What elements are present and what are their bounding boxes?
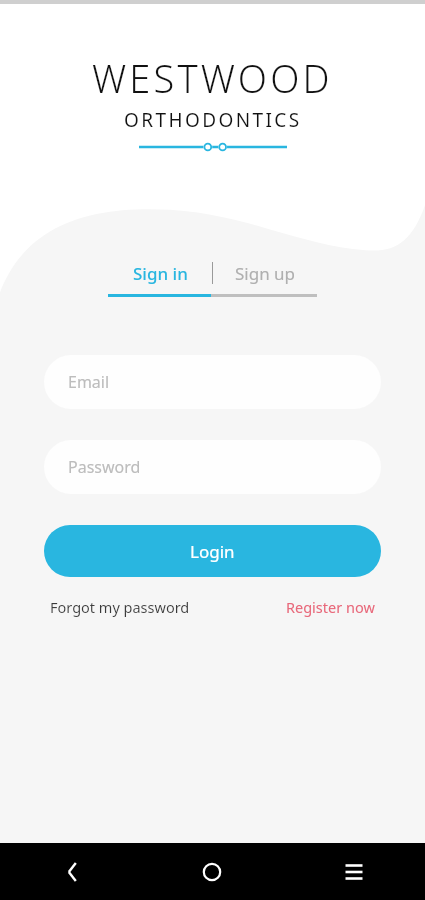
button[interactable]: Email — [44, 355, 381, 409]
button[interactable]: Back — [0, 843, 141, 900]
button[interactable]: Sign in — [108, 258, 212, 288]
button[interactable]: Register now — [286, 593, 375, 621]
button[interactable]: Sign up — [213, 258, 318, 288]
button[interactable]: Recent apps — [283, 843, 425, 900]
staticText: Email — [68, 371, 110, 393]
button[interactable]: Login — [44, 525, 381, 577]
staticText: Forgot my password — [50, 597, 190, 617]
button[interactable]: Forgot my password — [50, 593, 190, 621]
button[interactable]: Home — [141, 843, 283, 900]
staticText: Sign up — [235, 262, 296, 285]
staticText: Password — [68, 456, 141, 478]
staticText: Login — [190, 540, 235, 563]
staticText: WESTWOOD — [92, 52, 333, 104]
staticText: ORTHODONTICS — [124, 107, 302, 133]
button[interactable]: Password — [44, 440, 381, 494]
staticText: Sign in — [133, 262, 188, 285]
staticText: Register now — [286, 597, 375, 617]
